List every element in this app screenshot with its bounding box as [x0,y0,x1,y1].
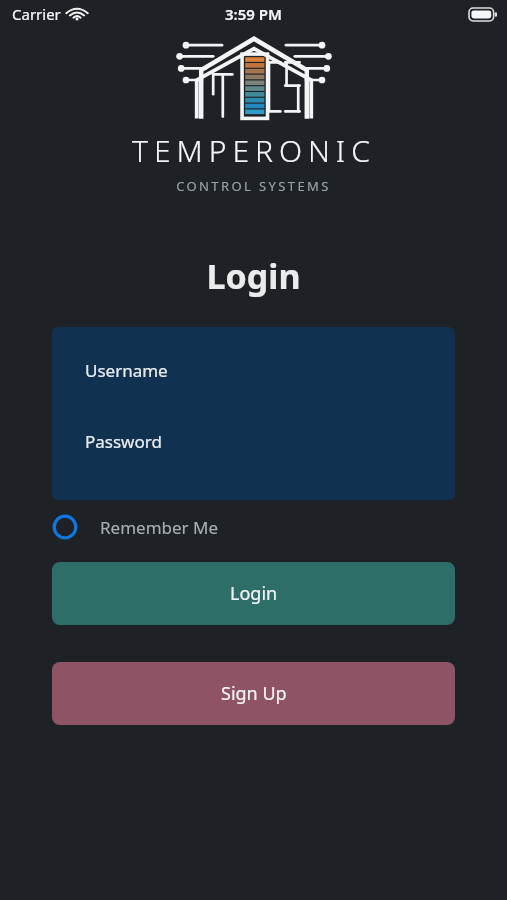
button[interactable]: Remember Me [52,508,455,546]
staticText: Login [206,253,301,299]
staticText: 3:59 PM [225,4,282,24]
staticText: TEMPERONIC [132,130,376,171]
staticText: Carrier [12,4,61,24]
other: Temperonic logo [174,34,334,120]
staticText: Remember Me [100,516,219,539]
button[interactable]: Username [52,327,455,413]
staticText: CONTROL SYSTEMS [176,177,331,195]
button[interactable]: Password [52,413,455,500]
staticText: Password [85,430,162,453]
staticText: Login [230,581,278,606]
button[interactable]: Login [52,562,455,625]
staticText: Sign Up [221,681,287,706]
button[interactable]: Sign Up [52,662,455,725]
staticText: Username [85,359,168,382]
